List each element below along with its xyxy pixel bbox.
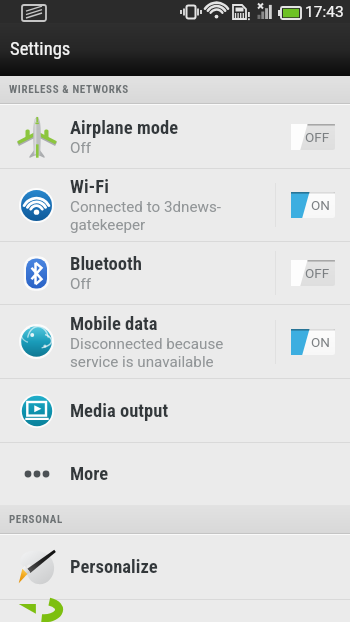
button[interactable]: On <box>291 192 335 218</box>
staticText: PERSONAL <box>9 513 63 526</box>
staticText: gatekeeper <box>70 216 146 234</box>
staticText: Personalize <box>70 556 158 578</box>
staticText: Airplane mode <box>70 117 179 139</box>
button[interactable]: More <box>0 443 350 505</box>
staticText: Wi-Fi <box>70 176 109 198</box>
staticText: Bluetooth <box>70 253 142 275</box>
staticText: ON <box>311 197 330 213</box>
button[interactable]: Bluetooth <box>0 242 350 304</box>
button[interactable]: Off <box>291 260 335 286</box>
staticText: OFF <box>305 129 330 145</box>
button[interactable]: Wi-Fi <box>0 169 350 241</box>
staticText: Settings <box>10 38 71 60</box>
staticText: More <box>70 463 109 485</box>
staticText: service is unavailable <box>70 353 214 371</box>
staticText: Connected to 3dnews- <box>70 198 221 216</box>
button[interactable] <box>0 600 350 622</box>
staticText: 17:43 <box>305 3 344 21</box>
staticText: Mobile data <box>70 313 158 335</box>
staticText: Off <box>70 275 92 293</box>
staticText: Disconnected because <box>70 335 224 353</box>
staticText: ON <box>311 334 330 350</box>
staticText: WIRELESS & NETWORKS <box>9 83 129 96</box>
button[interactable]: Airplane mode <box>0 105 350 168</box>
staticText: Media output <box>70 400 169 422</box>
button[interactable]: On <box>291 329 335 355</box>
button[interactable]: Off <box>291 124 335 150</box>
button[interactable]: Personalize <box>0 535 350 599</box>
button[interactable]: Media output <box>0 379 350 442</box>
button[interactable]: Mobile data <box>0 305 350 378</box>
staticText: OFF <box>305 265 330 281</box>
staticText: Off <box>70 139 92 157</box>
